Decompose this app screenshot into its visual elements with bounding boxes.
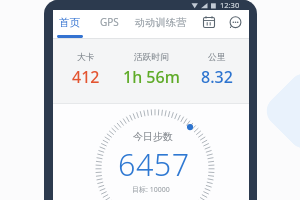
- staticText: 6457: [118, 143, 190, 185]
- staticText: 今日步数: [133, 130, 173, 143]
- staticText: 1h 56m: [123, 66, 180, 88]
- button[interactable]: 大卡: [53, 52, 119, 88]
- staticText: 目标: 10000: [132, 185, 170, 195]
- staticText: 首页: [59, 16, 80, 29]
- staticText: 8.32: [201, 66, 233, 88]
- button[interactable]: 公里: [184, 52, 249, 88]
- staticText: 活跃时间: [134, 52, 170, 63]
- staticText: 大卡: [77, 52, 95, 63]
- staticText: 412: [72, 66, 100, 88]
- staticText: 动动训练营: [135, 16, 187, 29]
- staticText: 12:30: [220, 0, 240, 10]
- button[interactable]: GPS: [100, 15, 119, 29]
- button[interactable]: 活跃时间: [119, 52, 184, 88]
- button[interactable]: 首页: [59, 16, 80, 29]
- staticText: 公里: [208, 52, 226, 63]
- button[interactable]: [203, 16, 215, 28]
- button[interactable]: 动动训练营: [135, 16, 187, 29]
- button[interactable]: [229, 16, 242, 29]
- staticText: GPS: [100, 15, 119, 29]
